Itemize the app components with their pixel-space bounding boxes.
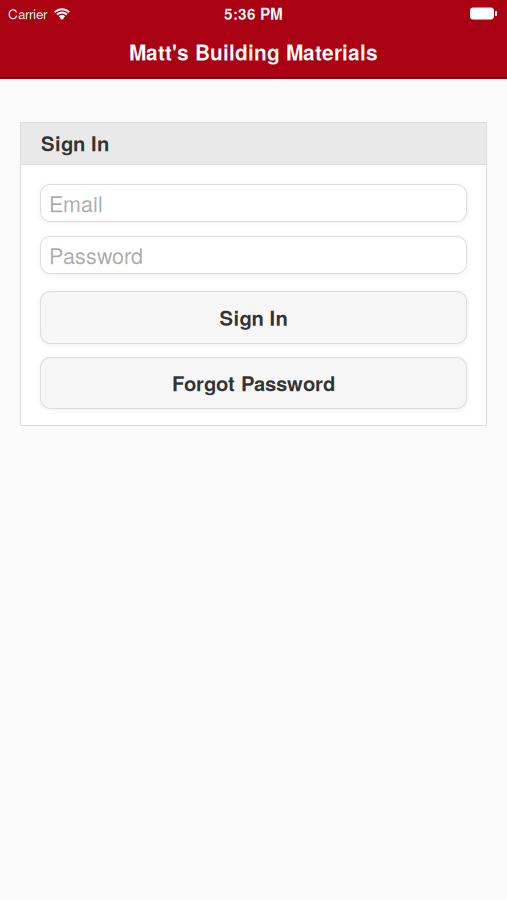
staticText: Sign In (219, 303, 287, 332)
staticText: Email (49, 188, 103, 218)
staticText: Forgot Password (172, 368, 335, 397)
staticText: Password (49, 240, 143, 270)
button[interactable]: Forgot Password (40, 357, 467, 409)
staticText: Matt's Building Materials (129, 37, 378, 67)
staticText: 5:36 PM (224, 2, 283, 24)
button[interactable]: Sign In (40, 291, 467, 344)
textField[interactable]: Email (40, 184, 467, 222)
textField[interactable]: Password (40, 236, 467, 274)
staticText: Sign In (41, 128, 109, 157)
staticText: Carrier (8, 4, 47, 23)
